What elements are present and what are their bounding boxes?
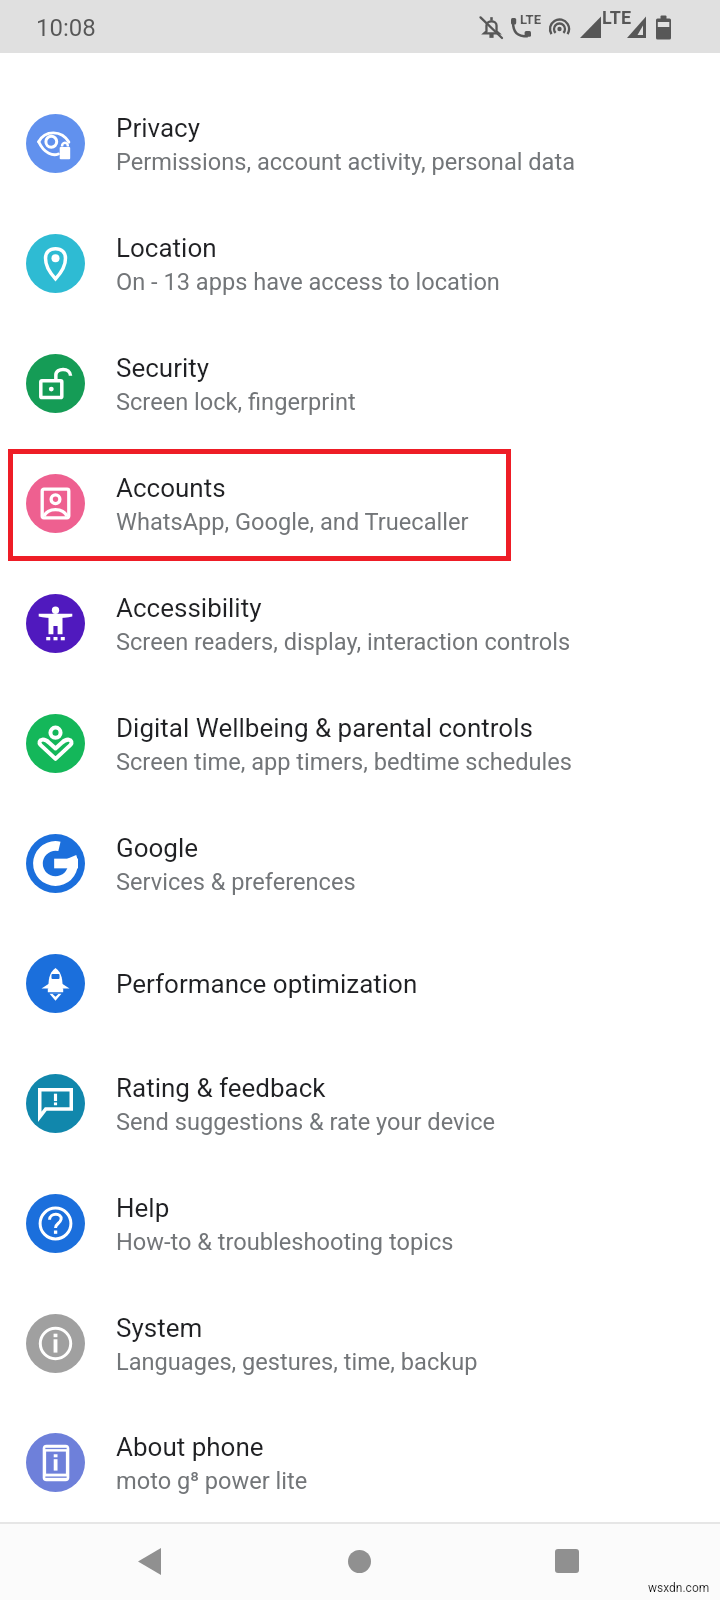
staticText: Languages, gestures, time, backup xyxy=(116,1348,478,1376)
staticText: Send suggestions & rate your device xyxy=(116,1108,496,1136)
staticText: Permissions, account activity, personal … xyxy=(116,148,575,176)
button[interactable]: Accounts xyxy=(0,443,720,563)
staticText: WhatsApp, Google, and Truecaller xyxy=(116,508,469,536)
staticText: Location xyxy=(116,233,217,263)
staticText: LTE xyxy=(520,12,541,27)
button[interactable]: Google xyxy=(0,803,720,923)
staticText: Screen readers, display, interaction con… xyxy=(116,628,571,656)
staticText: 10:08 xyxy=(36,14,96,42)
button[interactable]: Location xyxy=(0,203,720,323)
button[interactable]: Accessibility xyxy=(0,563,720,683)
staticText: System xyxy=(116,1313,203,1343)
staticText: Privacy xyxy=(116,113,200,143)
button[interactable]: System xyxy=(0,1283,720,1403)
button[interactable]: Help xyxy=(0,1163,720,1283)
staticText: Google xyxy=(116,833,199,863)
staticText: Accounts xyxy=(116,473,226,503)
staticText: Accessibility xyxy=(116,593,262,623)
button[interactable]: Rating & feedback xyxy=(0,1043,720,1163)
button[interactable]: Back xyxy=(111,1523,187,1599)
staticText: wsxdn.com xyxy=(648,1581,710,1595)
staticText: moto g⁸ power lite xyxy=(116,1467,308,1495)
button[interactable]: Digital Wellbeing & parental controls xyxy=(0,683,720,803)
staticText: Services & preferences xyxy=(116,868,356,896)
staticText: Screen lock, fingerprint xyxy=(116,388,356,416)
staticText: Performance optimization xyxy=(116,969,418,999)
button[interactable]: About phone xyxy=(0,1403,720,1522)
staticText: On - 13 apps have access to location xyxy=(116,268,500,296)
button[interactable]: Home xyxy=(321,1523,397,1599)
staticText: LTE xyxy=(602,7,632,28)
staticText: Rating & feedback xyxy=(116,1073,326,1103)
staticText: Screen time, app timers, bedtime schedul… xyxy=(116,748,573,776)
staticText: How-to & troubleshooting topics xyxy=(116,1228,454,1256)
button[interactable]: Privacy xyxy=(0,83,720,203)
button[interactable]: Recent apps xyxy=(529,1523,605,1599)
staticText: About phone xyxy=(116,1432,264,1462)
staticText: Security xyxy=(116,353,210,383)
button[interactable]: Security xyxy=(0,323,720,443)
staticText: Digital Wellbeing & parental controls xyxy=(116,713,533,743)
button[interactable]: Performance optimization xyxy=(0,923,720,1043)
staticText: Help xyxy=(116,1193,170,1223)
